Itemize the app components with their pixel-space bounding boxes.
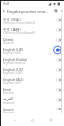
button[interactable]: English (US) <box>0 65 64 75</box>
button[interactable]: 中文 (简体) <box>0 15 64 25</box>
staticText: English (US) <box>3 67 23 72</box>
button[interactable]: English (UK) <box>0 45 64 55</box>
staticText: Finnisch <box>3 111 15 115</box>
staticText: 中文 (简体) <box>3 17 21 22</box>
staticText: Dansk <box>3 37 14 42</box>
staticText: English (AU) <box>3 77 24 82</box>
button[interactable]: English (India) <box>0 55 64 65</box>
button[interactable]: Eesti <box>0 85 64 95</box>
button[interactable]: 中文 (繁體) <box>0 25 64 35</box>
button[interactable]: العربية <box>0 95 64 105</box>
staticText: Englisch (Indien) <box>3 61 26 65</box>
staticText: Arabisch <box>3 101 15 105</box>
button[interactable]: Dansk <box>0 35 64 45</box>
staticText: Chinesisch (vereinfacht) <box>3 21 36 25</box>
staticText: Englisch (AU) <box>3 81 21 85</box>
staticText: Englisch (UK) <box>3 51 21 55</box>
staticText: العربية <box>3 97 13 101</box>
staticText: 9:41 <box>3 1 10 6</box>
staticText: Eesti <box>3 87 11 92</box>
staticText: Estnisch <box>3 91 15 95</box>
button[interactable]: More options <box>59 7 64 15</box>
button[interactable]: Back <box>0 7 7 15</box>
staticText: Suomi <box>3 107 14 112</box>
staticText: 中文 (繁體) <box>3 27 21 32</box>
button[interactable]: Back <box>9 115 19 125</box>
button[interactable]: Recent apps <box>46 115 56 125</box>
staticText: Englisch (USA) <box>3 71 23 75</box>
button[interactable]: Suomi <box>0 105 64 113</box>
button[interactable]: Search <box>52 7 59 15</box>
staticText: English (UK) <box>3 47 24 52</box>
button[interactable]: English (AU) <box>0 75 64 85</box>
staticText: English (India) <box>3 57 27 62</box>
staticText: Dänisch <box>3 41 14 45</box>
staticText: Chinesisch (traditionell) <box>3 31 35 35</box>
staticText: Eingabesprachen verw... <box>7 9 52 14</box>
button[interactable]: Home <box>27 115 37 125</box>
